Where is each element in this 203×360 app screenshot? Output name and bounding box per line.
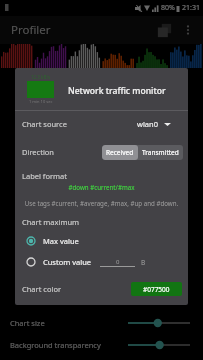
- button[interactable]: #077500: [131, 282, 182, 296]
- staticText: 80%: [161, 3, 175, 13]
- staticText: #down #current/#max: [15, 183, 188, 191]
- staticText: Label format: [22, 171, 68, 181]
- staticText: Profiler: [11, 22, 51, 38]
- staticText: Use tags #current, #average, #max, #up a…: [15, 199, 188, 207]
- staticText: 1 min 10 sec: [29, 99, 53, 104]
- staticText: Direction: [22, 147, 55, 157]
- staticText: 21:31: [182, 3, 200, 13]
- staticText: Network traffic monitor: [68, 85, 166, 97]
- button[interactable]: More options: [177, 19, 199, 41]
- staticText: wlan0: [137, 119, 158, 129]
- staticText: Custom value: [43, 257, 91, 267]
- button[interactable]: Chart size: [0, 312, 203, 334]
- staticText: Max value: [43, 236, 79, 246]
- staticText: 12.3 kB/s: [31, 74, 51, 80]
- staticText: Chart size: [10, 318, 45, 328]
- button[interactable]: Background transparency: [0, 334, 203, 356]
- staticText: Transmitted: [142, 148, 179, 157]
- staticText: 0: [116, 258, 120, 266]
- staticText: Background transparency: [10, 340, 101, 350]
- button[interactable]: Max value: [15, 233, 188, 249]
- staticText: Chart color: [22, 284, 62, 294]
- staticText: Chart maximum: [22, 217, 80, 227]
- staticText: Received: [106, 148, 134, 157]
- button[interactable]: Custom value: [15, 254, 188, 270]
- staticText: Chart source: [22, 119, 67, 129]
- button[interactable]: Received: [102, 145, 138, 160]
- button[interactable]: Transmitted: [138, 145, 183, 160]
- staticText: B: [141, 258, 146, 267]
- button[interactable]: Chart source: [15, 113, 188, 135]
- button[interactable]: Multi window: [151, 17, 177, 43]
- staticText: #077500: [143, 285, 170, 294]
